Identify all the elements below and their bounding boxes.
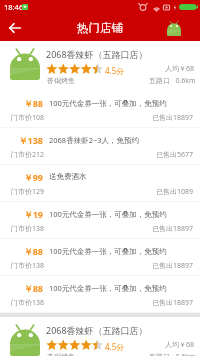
- staticText: 五路口 0.6km: [149, 352, 196, 356]
- staticText: 门市价138: [11, 224, 45, 234]
- button[interactable]: ￥88: [0, 276, 200, 313]
- staticText: 热门店铺: [77, 21, 123, 35]
- staticText: 100元代金券一张，可叠加，免预约: [49, 98, 167, 108]
- button[interactable]: ￥88: [0, 91, 200, 128]
- staticText: 门市价138: [11, 261, 45, 271]
- staticText: ￥88: [0, 245, 43, 257]
- button[interactable]: ￥88: [0, 239, 200, 276]
- staticText: ￥88: [0, 282, 43, 294]
- staticText: ￥19: [0, 208, 43, 220]
- button[interactable]: ￥19: [0, 202, 200, 239]
- staticText: 已售出18897: [152, 298, 194, 308]
- button[interactable]: 2068香辣虾（五路口店）: [0, 41, 200, 91]
- staticText: ￥88: [0, 97, 43, 109]
- staticText: 五路口 0.6km: [149, 76, 196, 86]
- staticText: 100元代金券一张，可叠加，免预约: [49, 209, 167, 219]
- staticText: 已售出18897: [152, 113, 194, 123]
- staticText: 已售出18897: [152, 224, 194, 234]
- button[interactable]: ￥99: [0, 165, 200, 202]
- staticText: 100元代金券一张，可叠加，免预约: [49, 283, 167, 293]
- staticText: 已售出18897: [152, 261, 194, 271]
- staticText: 18:46: [4, 2, 24, 12]
- staticText: 100元代金券一张，可叠加，免预约: [49, 246, 167, 256]
- button[interactable]: 2068香辣虾（五路口店）: [0, 317, 200, 356]
- staticText: 已售出5677: [156, 150, 194, 160]
- staticText: 门市价129: [11, 187, 45, 197]
- staticText: 门市价138: [11, 298, 45, 308]
- staticText: 香锅烤鱼: [47, 352, 75, 356]
- staticText: 门市价108: [11, 113, 45, 123]
- staticText: 2068香辣虾2~3人，免预约: [49, 135, 140, 145]
- staticText: ￥138: [0, 134, 43, 146]
- staticText: 4.5分: [105, 341, 125, 352]
- staticText: 香锅烤鱼: [47, 76, 75, 85]
- staticText: ￥99: [0, 171, 43, 183]
- staticText: 送免费酒水: [49, 172, 87, 181]
- staticText: 4.5分: [105, 65, 125, 76]
- staticText: 2068香辣虾（五路口店）: [46, 48, 148, 60]
- staticText: 2068香辣虾（五路口店）: [46, 324, 148, 336]
- staticText: 门市价212: [11, 150, 45, 160]
- button[interactable]: Android app: [167, 20, 181, 36]
- button[interactable]: ￥138: [0, 128, 200, 165]
- staticText: 人均￥68: [165, 340, 195, 350]
- button[interactable]: Back: [0, 14, 30, 41]
- staticText: 已售出1089: [156, 187, 194, 197]
- staticText: 人均￥68: [165, 64, 195, 74]
